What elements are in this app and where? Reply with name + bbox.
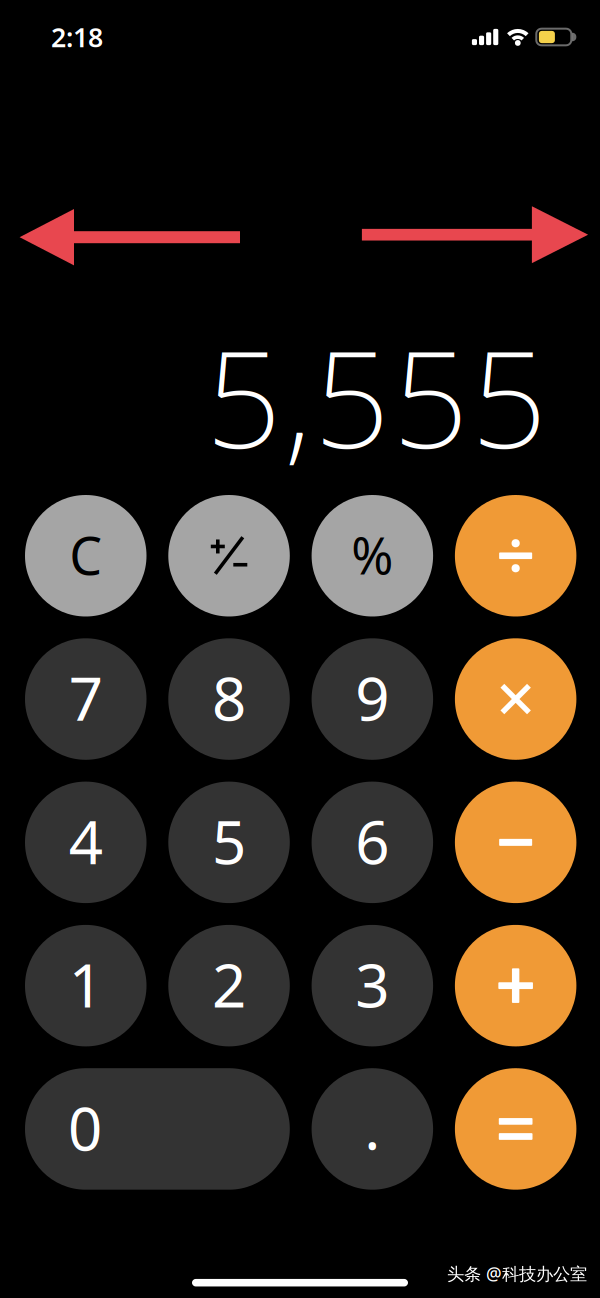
button[interactable]: 6 [312,782,433,903]
button[interactable]: C [25,495,146,616]
staticText: 头条 @科技办公室 [447,1262,587,1285]
staticText: 6 [355,801,389,881]
staticText: 4 [69,801,103,881]
button[interactable]: % [312,495,433,616]
staticText: % [351,521,393,588]
button[interactable]: Minus [455,782,576,903]
button[interactable]: Plus [455,925,576,1046]
staticText: 3 [355,944,389,1024]
button[interactable]: 9 [312,638,433,760]
staticText: 8 [212,658,246,737]
button[interactable]: Divide [455,495,576,616]
staticText: 0 [68,1088,102,1167]
button[interactable]: Plus Minus [168,495,290,616]
button[interactable]: 3 [312,925,433,1046]
button[interactable]: 7 [25,638,146,760]
staticText: 1 [69,944,103,1024]
staticText: 2:18 [51,19,103,55]
staticText: 9 [355,658,389,737]
staticText: 2 [212,944,246,1024]
button[interactable]: 0 [25,1068,290,1190]
button[interactable]: Multiply [455,638,576,760]
button[interactable]: 8 [168,638,290,760]
button[interactable]: 1 [25,925,146,1046]
staticText: 7 [69,658,103,737]
button[interactable]: 4 [25,782,146,903]
staticText: C [69,520,102,589]
staticText: . [364,1087,380,1166]
staticText: 5,555 [206,308,547,485]
button[interactable]: Decimal point [312,1068,433,1190]
button[interactable]: 2 [168,925,290,1046]
button[interactable]: Equals [455,1068,576,1190]
button[interactable]: 5 [168,782,290,903]
staticText: 5 [212,801,246,881]
